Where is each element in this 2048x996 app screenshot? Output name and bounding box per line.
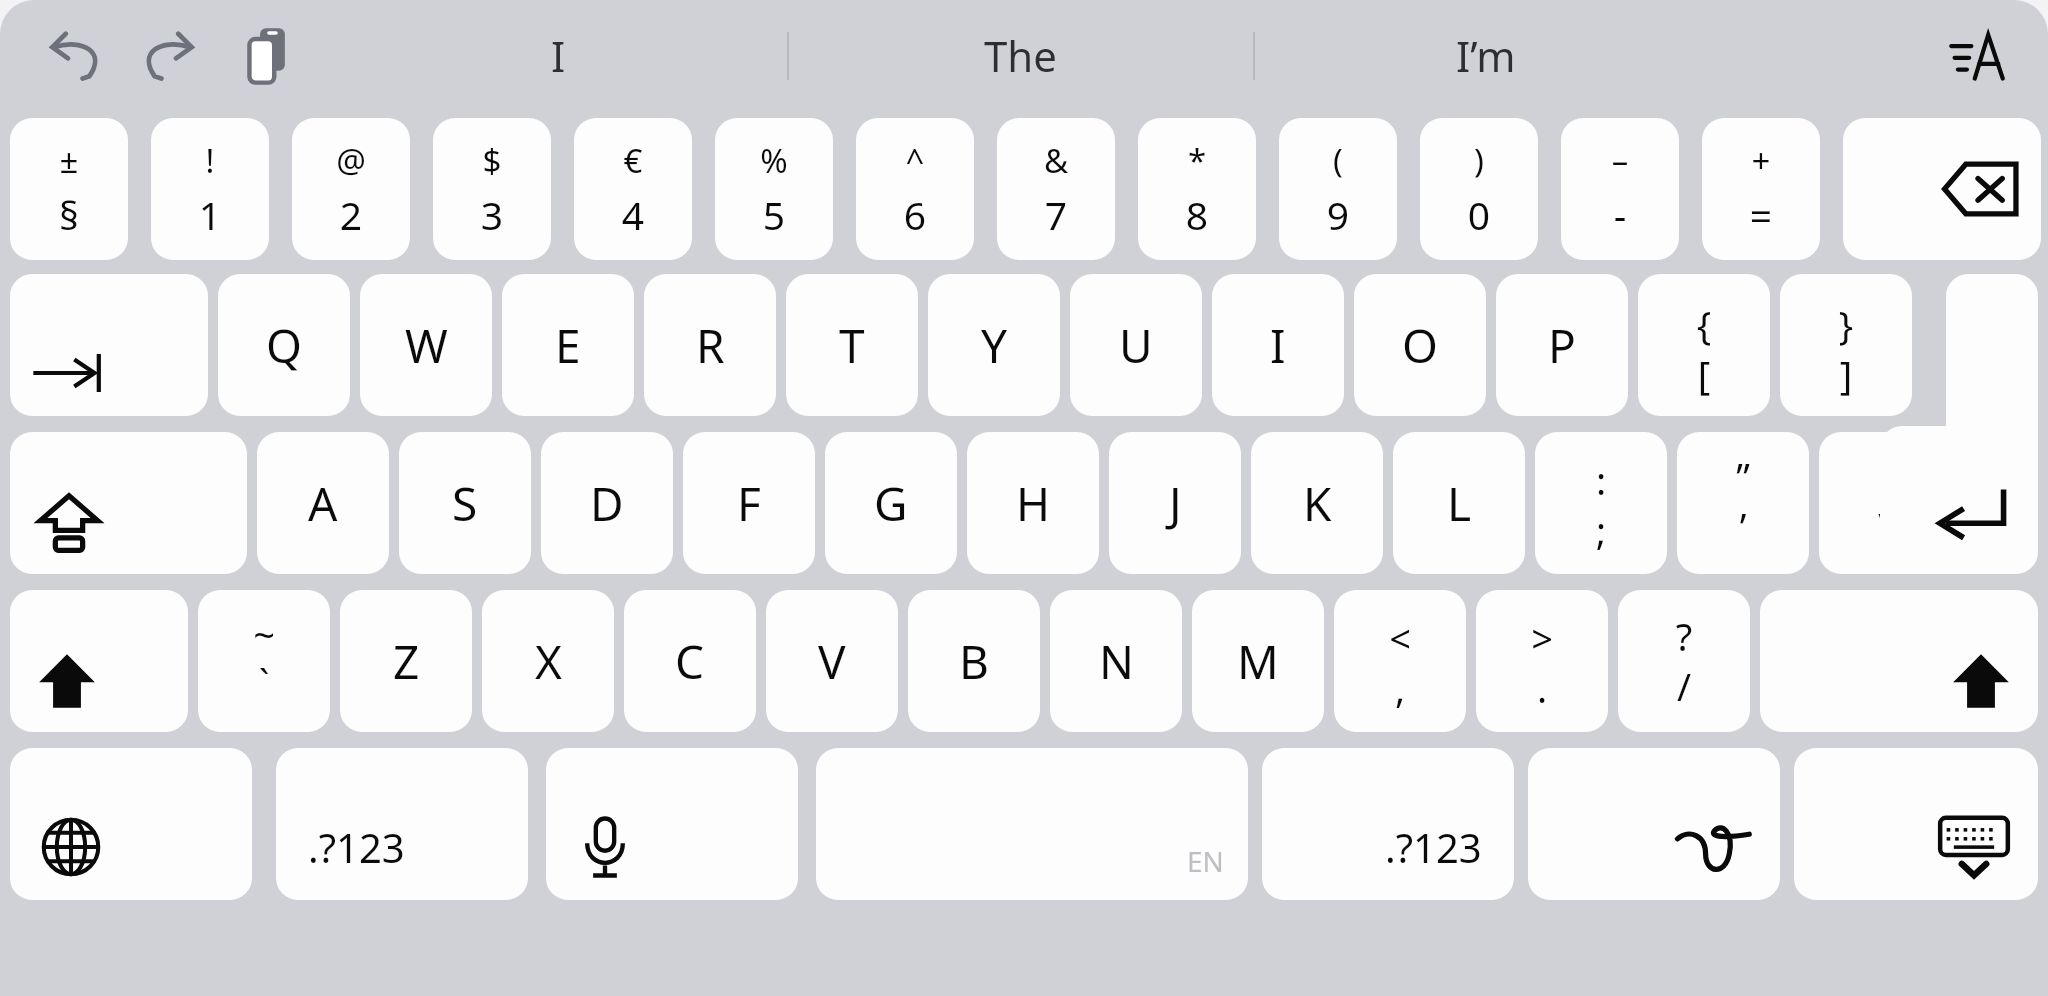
button[interactable]: B [908,590,1040,732]
button[interactable]: .?123 [276,748,528,900]
staticText: Z [393,630,420,693]
button[interactable]: Text formatting [1942,20,2012,90]
staticText: ] [1780,348,1912,400]
staticText: EN [1187,842,1224,880]
button[interactable]: Caps lock [10,432,247,574]
button[interactable]: P [1496,274,1628,416]
staticText: ! [151,138,269,183]
button[interactable]: Return [1880,274,2038,574]
button[interactable]: } [1780,274,1912,416]
button[interactable]: R [644,274,776,416]
button[interactable]: Next keyboard [10,748,252,900]
staticText: Y [981,314,1008,377]
button[interactable]: ! [151,118,269,260]
button[interactable]: Scribble [1528,748,1780,900]
staticText: 0 [1420,188,1538,241]
button[interactable]: Shift [10,590,188,732]
button[interactable]: Y [928,274,1060,416]
button[interactable]: € [574,118,692,260]
button[interactable]: I’m [1253,0,1719,110]
button[interactable]: E [502,274,634,416]
button[interactable]: % [715,118,833,260]
staticText: ? [1618,610,1750,662]
button[interactable]: L [1393,432,1525,574]
button[interactable]: $ [433,118,551,260]
button[interactable]: J [1109,432,1241,574]
button[interactable]: S [399,432,531,574]
button[interactable]: ~ [198,590,330,732]
button[interactable]: G [825,432,957,574]
button[interactable]: Z [340,590,472,732]
button[interactable]: ± [10,118,128,260]
staticText: . [1476,662,1608,714]
button[interactable]: & [997,118,1115,260]
button[interactable]: X [482,590,614,732]
staticText: 3 [433,188,551,241]
staticText: ~ [198,608,330,660]
button[interactable]: | [1819,432,1951,574]
staticText: 9 [1279,188,1397,241]
button[interactable]: * [1138,118,1256,260]
staticText: P [1548,314,1576,377]
button[interactable]: I [330,0,787,110]
button[interactable]: Paste [232,18,306,92]
button[interactable]: I [1212,274,1344,416]
button[interactable]: N [1050,590,1182,732]
staticText: O [1402,314,1438,377]
button[interactable]: : [1535,432,1667,574]
button[interactable]: + [1702,118,1820,260]
staticText: ’ [1677,500,1809,552]
staticText: I [551,27,566,84]
button[interactable]: { [1638,274,1770,416]
staticText: & [997,138,1115,183]
staticText: W [405,314,448,377]
staticText: % [715,138,833,183]
button[interactable]: D [541,432,673,574]
button[interactable]: ( [1279,118,1397,260]
staticText: .?123 [308,820,405,874]
staticText: 6 [856,188,974,241]
staticText: : [1535,454,1667,506]
button[interactable]: F [683,432,815,574]
button[interactable]: @ [292,118,410,260]
button[interactable]: Redo [132,20,202,90]
button[interactable]: U [1070,274,1202,416]
staticText: 2 [292,188,410,241]
button[interactable]: Dictation [546,748,798,900]
button[interactable]: ” [1677,432,1809,574]
button[interactable]: Tab [10,274,208,416]
staticText: ± [10,138,128,183]
staticText: U [1119,314,1153,377]
button[interactable]: A [257,432,389,574]
staticText: V [818,630,846,693]
button[interactable]: V [766,590,898,732]
button[interactable]: H [967,432,1099,574]
button[interactable]: T [786,274,918,416]
button[interactable]: Q [218,274,350,416]
staticText: T [839,314,865,377]
button[interactable]: Undo [42,20,112,90]
button[interactable]: < [1334,590,1466,732]
button[interactable]: K [1251,432,1383,574]
button[interactable]: C [624,590,756,732]
button[interactable]: ? [1618,590,1750,732]
button[interactable]: Space [816,748,1248,900]
staticText: R [696,314,725,377]
staticText: ” [1677,450,1809,502]
button[interactable]: The [787,0,1253,110]
staticText: K [1303,472,1332,535]
button[interactable]: M [1192,590,1324,732]
staticText: 8 [1138,188,1256,241]
button[interactable]: ^ [856,118,974,260]
button[interactable]: .?123 [1262,748,1514,900]
button[interactable]: – [1561,118,1679,260]
staticText: The [984,27,1057,84]
button[interactable]: Shift [1760,590,2038,732]
button[interactable]: Backspace [1843,118,2041,260]
button[interactable]: > [1476,590,1608,732]
button[interactable]: Hide keyboard [1794,748,2038,900]
button[interactable]: O [1354,274,1486,416]
staticText: > [1476,612,1608,664]
button[interactable]: ) [1420,118,1538,260]
button[interactable]: W [360,274,492,416]
